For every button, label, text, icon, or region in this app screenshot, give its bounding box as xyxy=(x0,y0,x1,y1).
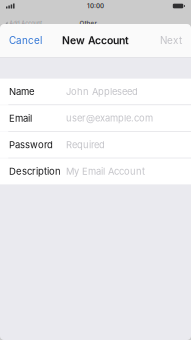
staticText: Password xyxy=(9,139,53,151)
staticText: Name xyxy=(9,86,35,97)
staticText: Other xyxy=(79,20,96,27)
staticText: Cancel xyxy=(9,34,42,46)
staticText: Email xyxy=(9,112,32,124)
button[interactable]: Cancel xyxy=(0,27,51,53)
staticText: Required xyxy=(66,139,105,150)
button[interactable]: Name xyxy=(0,79,191,105)
staticText: My Email Account xyxy=(66,166,145,177)
staticText: Next xyxy=(160,34,182,46)
staticText: Add Account xyxy=(9,20,42,27)
staticText: Description xyxy=(9,166,61,177)
staticText: user@example.com xyxy=(66,113,153,124)
button[interactable]: Email xyxy=(0,105,191,131)
staticText: New Account xyxy=(62,34,129,47)
button[interactable]: Password xyxy=(0,132,191,158)
staticText: 10:00 xyxy=(87,2,104,10)
button[interactable]: Description xyxy=(0,158,191,184)
staticText: John Appleseed xyxy=(66,86,138,97)
button[interactable]: Next xyxy=(151,27,191,53)
